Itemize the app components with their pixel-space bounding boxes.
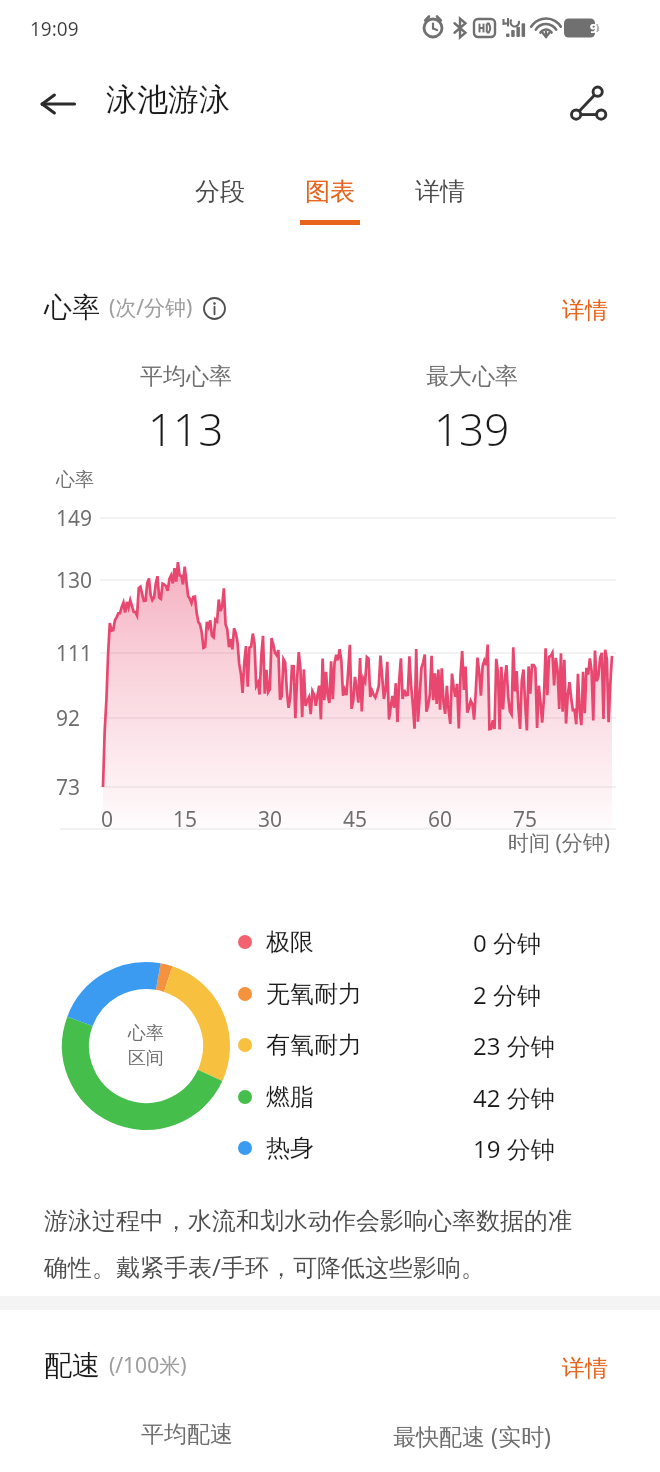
button[interactable]: Share [558, 74, 618, 134]
staticText: 时间 (分钟) [508, 828, 611, 857]
staticText: 42 分钟 [473, 1081, 555, 1114]
staticText: (次/分钟) [109, 293, 193, 322]
staticText: 19:09 [30, 16, 79, 42]
staticText: 75 [513, 805, 538, 834]
staticText: 最快配速 (实时) [393, 1420, 551, 1451]
staticText: 0 分钟 [473, 926, 541, 959]
staticText: 心率 [56, 468, 94, 492]
staticText: 区间 [128, 1047, 164, 1070]
staticText: 燃脂 [266, 1082, 314, 1112]
staticText: 45 [343, 805, 368, 834]
button[interactable]: 极限 [238, 918, 578, 966]
staticText: 分段 [195, 176, 245, 207]
button[interactable]: 详情 [556, 292, 614, 329]
staticText: 无氧耐力 [266, 979, 362, 1009]
staticText: 113 [148, 399, 224, 459]
button[interactable]: 详情 [556, 1350, 614, 1387]
staticText: 2 分钟 [473, 978, 541, 1011]
button[interactable]: Back [32, 78, 84, 130]
staticText: 23 分钟 [473, 1029, 555, 1062]
staticText: 30 [258, 805, 283, 834]
staticText: 游泳过程中，水流和划水动作会影响心率数据的准 [44, 1206, 572, 1236]
button[interactable]: 无氧耐力 [238, 970, 578, 1018]
button[interactable]: 热身 [238, 1124, 578, 1172]
staticText: 149 [56, 504, 93, 533]
staticText: 0 [101, 805, 114, 834]
staticText: 心率 [128, 1022, 164, 1045]
staticText: 确性。戴紧手表/手环，可降低这些影响。 [44, 1250, 485, 1283]
staticText: 有氧耐力 [266, 1030, 362, 1060]
staticText: 详情 [415, 176, 465, 207]
staticText: 图表 [305, 176, 355, 207]
button[interactable]: 分段 [167, 176, 273, 238]
button[interactable]: Info [203, 297, 226, 320]
staticText: 111 [56, 639, 93, 668]
staticText: 心率 [44, 290, 100, 325]
button[interactable]: 有氧耐力 [238, 1021, 578, 1069]
staticText: 73 [56, 773, 81, 802]
staticText: 详情 [562, 1354, 608, 1383]
staticText: 最大心率 [426, 362, 518, 391]
staticText: 93 [590, 19, 605, 37]
staticText: 热身 [266, 1133, 314, 1163]
staticText: 60 [428, 805, 453, 834]
staticText: 15 [173, 805, 198, 834]
staticText: (/100米) [109, 1351, 187, 1380]
button[interactable]: 详情 [387, 176, 493, 238]
staticText: 139 [434, 399, 510, 459]
button[interactable]: 图表 [277, 176, 383, 238]
staticText: 泳池游泳 [106, 80, 230, 119]
button[interactable]: 燃脂 [238, 1073, 578, 1121]
staticText: 19 分钟 [473, 1132, 555, 1165]
staticText: 平均配速 [141, 1420, 233, 1449]
staticText: 详情 [562, 296, 608, 325]
staticText: 92 [56, 704, 81, 733]
staticText: 极限 [266, 927, 314, 957]
staticText: 平均心率 [140, 362, 232, 391]
staticText: 配速 [44, 1348, 100, 1383]
staticText: 130 [56, 566, 93, 595]
